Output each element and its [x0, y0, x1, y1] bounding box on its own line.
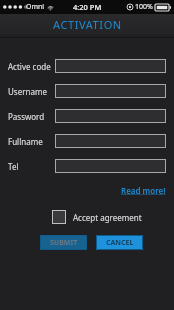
button[interactable]: SUBMIT: [40, 235, 87, 250]
staticText: Username: [8, 86, 47, 97]
staticText: Read more!: [121, 185, 166, 196]
staticText: Omni: [26, 2, 45, 12]
button[interactable]: CANCEL: [96, 235, 143, 250]
staticText: Password: [8, 111, 45, 122]
button[interactable]: [55, 84, 166, 98]
staticText: CANCEL: [106, 238, 134, 248]
button[interactable]: Read more!: [121, 183, 174, 198]
staticText: Tel: [8, 161, 19, 172]
button[interactable]: [55, 159, 166, 173]
staticText: Active code: [8, 61, 51, 72]
staticText: SUBMIT: [50, 238, 78, 248]
staticText: Accept agreement: [73, 212, 142, 223]
staticText: 100%: [135, 2, 153, 12]
staticText: ACTIVATION: [53, 17, 122, 32]
staticText: Fullname: [8, 136, 43, 147]
button[interactable]: [55, 109, 166, 123]
staticText: 4:20 PM: [73, 2, 102, 12]
button[interactable]: [55, 134, 166, 148]
button[interactable]: [55, 59, 166, 73]
button[interactable]: Accept agreement: [52, 210, 142, 224]
